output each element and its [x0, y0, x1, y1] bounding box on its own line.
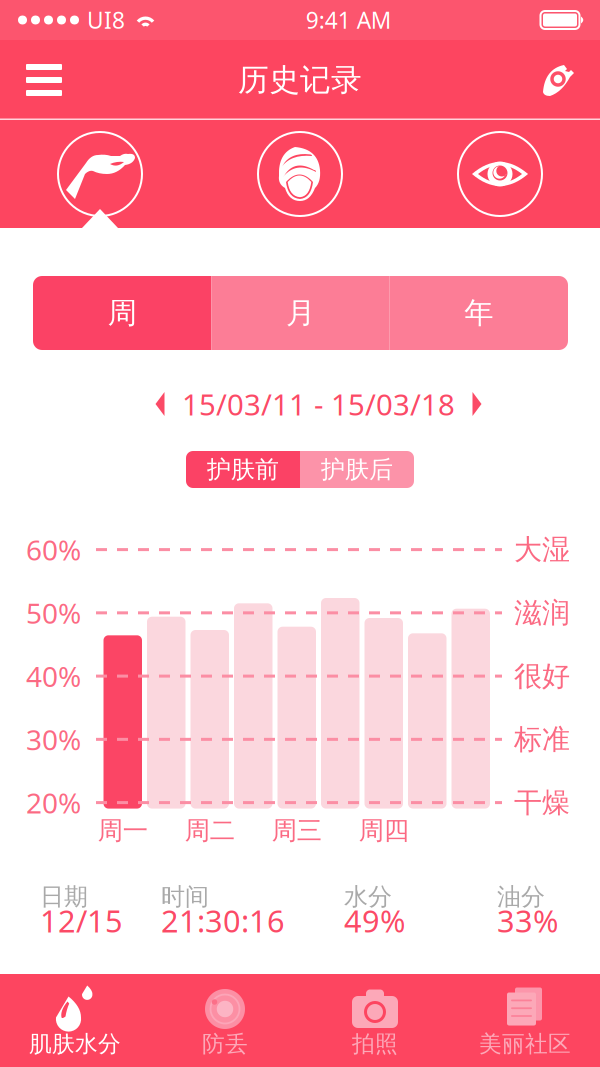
staticText: 60% — [26, 531, 81, 568]
button[interactable]: 防丢 — [150, 974, 300, 1067]
button[interactable]: Next week — [464, 385, 490, 423]
button[interactable]: 护肤后 — [300, 451, 414, 488]
staticText: 年 — [464, 295, 493, 331]
staticText: 20% — [26, 784, 81, 821]
staticText: 周三 — [272, 815, 322, 846]
button[interactable]: Device — [526, 47, 592, 113]
staticText: 12/15 — [40, 900, 123, 941]
staticText: 油分 — [497, 882, 545, 911]
staticText: UI8 — [87, 5, 125, 35]
staticText: 40% — [26, 657, 81, 695]
staticText: 美丽社区 — [479, 1030, 571, 1058]
staticText: 很好 — [514, 659, 570, 693]
button[interactable]: 月 — [211, 276, 390, 350]
staticText: 护肤后 — [321, 455, 393, 484]
staticText: 21:30:16 — [161, 900, 285, 941]
button[interactable]: Eye moisture — [400, 120, 600, 228]
button[interactable]: 拍照 — [300, 974, 450, 1067]
staticText: 水分 — [344, 882, 392, 911]
staticText: 历史记录 — [238, 61, 362, 99]
staticText: 干燥 — [514, 785, 570, 820]
staticText: 肌肤水分 — [29, 1030, 121, 1058]
button[interactable]: 肌肤水分 — [0, 974, 150, 1067]
button[interactable]: 年 — [390, 276, 568, 350]
staticText: 护肤前 — [207, 455, 279, 484]
staticText: 大湿 — [514, 532, 570, 567]
button[interactable]: 美丽社区 — [450, 974, 600, 1067]
staticText: 时间 — [161, 882, 209, 911]
staticText: 49% — [344, 900, 405, 941]
button[interactable]: Previous week — [147, 385, 173, 423]
staticText: 33% — [497, 900, 558, 941]
button[interactable]: Hand moisture — [0, 120, 200, 228]
button[interactable]: 周 — [33, 276, 211, 350]
staticText: 15/03/11 - 15/03/18 — [182, 384, 455, 423]
staticText: 周二 — [185, 815, 235, 846]
staticText: 30% — [26, 721, 81, 758]
button[interactable]: Face moisture — [200, 120, 400, 228]
staticText: 50% — [26, 594, 81, 631]
staticText: 日期 — [40, 882, 88, 911]
staticText: 周 — [108, 295, 137, 331]
staticText: 防丢 — [202, 1030, 248, 1058]
staticText: 9:41 AM — [306, 5, 392, 35]
staticText: 拍照 — [352, 1030, 398, 1058]
staticText: 标准 — [514, 722, 570, 757]
staticText: 周一 — [98, 815, 148, 846]
staticText: 滋润 — [514, 596, 570, 630]
button[interactable]: 护肤前 — [186, 451, 300, 488]
staticText: 周四 — [359, 815, 409, 846]
button[interactable]: Menu — [8, 47, 80, 113]
staticText: 月 — [286, 295, 315, 331]
